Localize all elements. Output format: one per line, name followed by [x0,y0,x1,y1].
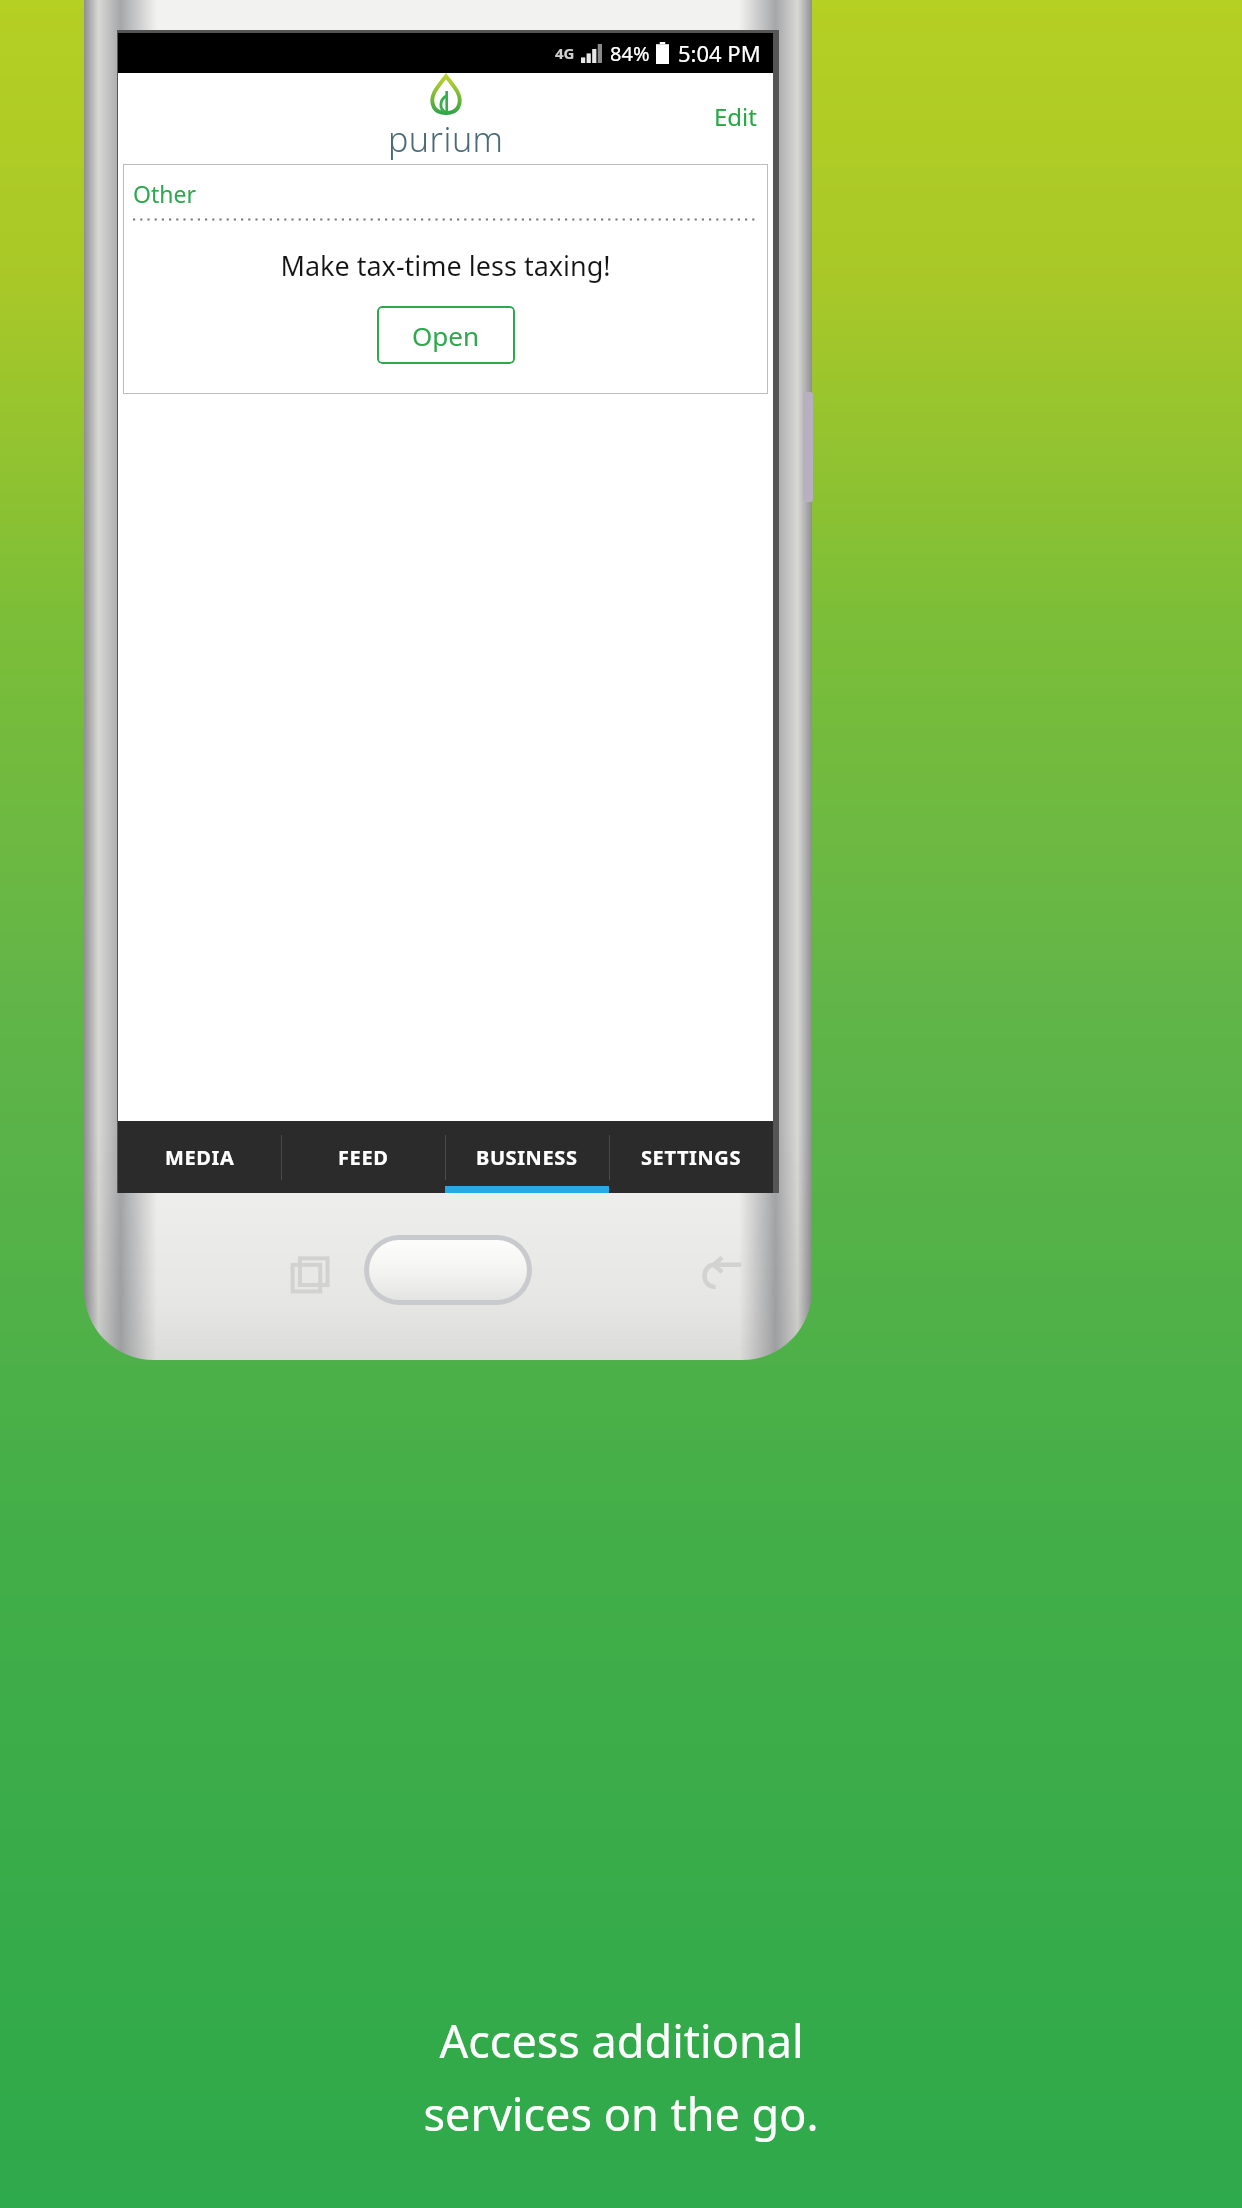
staticText: purium [388,116,504,161]
staticText: Access additional [439,2010,804,2071]
staticText: Open [412,318,480,353]
staticText: Edit [714,100,757,133]
staticText: FEED [338,1144,389,1171]
staticText: SETTINGS [641,1144,742,1171]
staticText: 84% [610,40,650,67]
staticText: MEDIA [165,1144,235,1171]
staticText: services on the go. [423,2083,819,2144]
button[interactable]: Edit [702,90,769,143]
staticText: Other [133,178,196,209]
staticText: 5:04 PM [678,38,761,68]
button[interactable]: Open [377,306,515,364]
button[interactable]: Recents [280,1243,342,1305]
staticText: 4G [555,43,575,63]
staticText: BUSINESS [476,1144,578,1171]
staticText: Make tax-time less taxing! [123,247,768,284]
button[interactable]: Home [364,1235,532,1305]
button[interactable]: Other [123,164,768,394]
button[interactable]: Back [692,1243,754,1305]
button[interactable]: SETTINGS [609,1121,773,1193]
button[interactable]: FEED [281,1121,445,1193]
button[interactable]: BUSINESS [445,1121,609,1193]
button[interactable]: MEDIA [118,1121,281,1193]
